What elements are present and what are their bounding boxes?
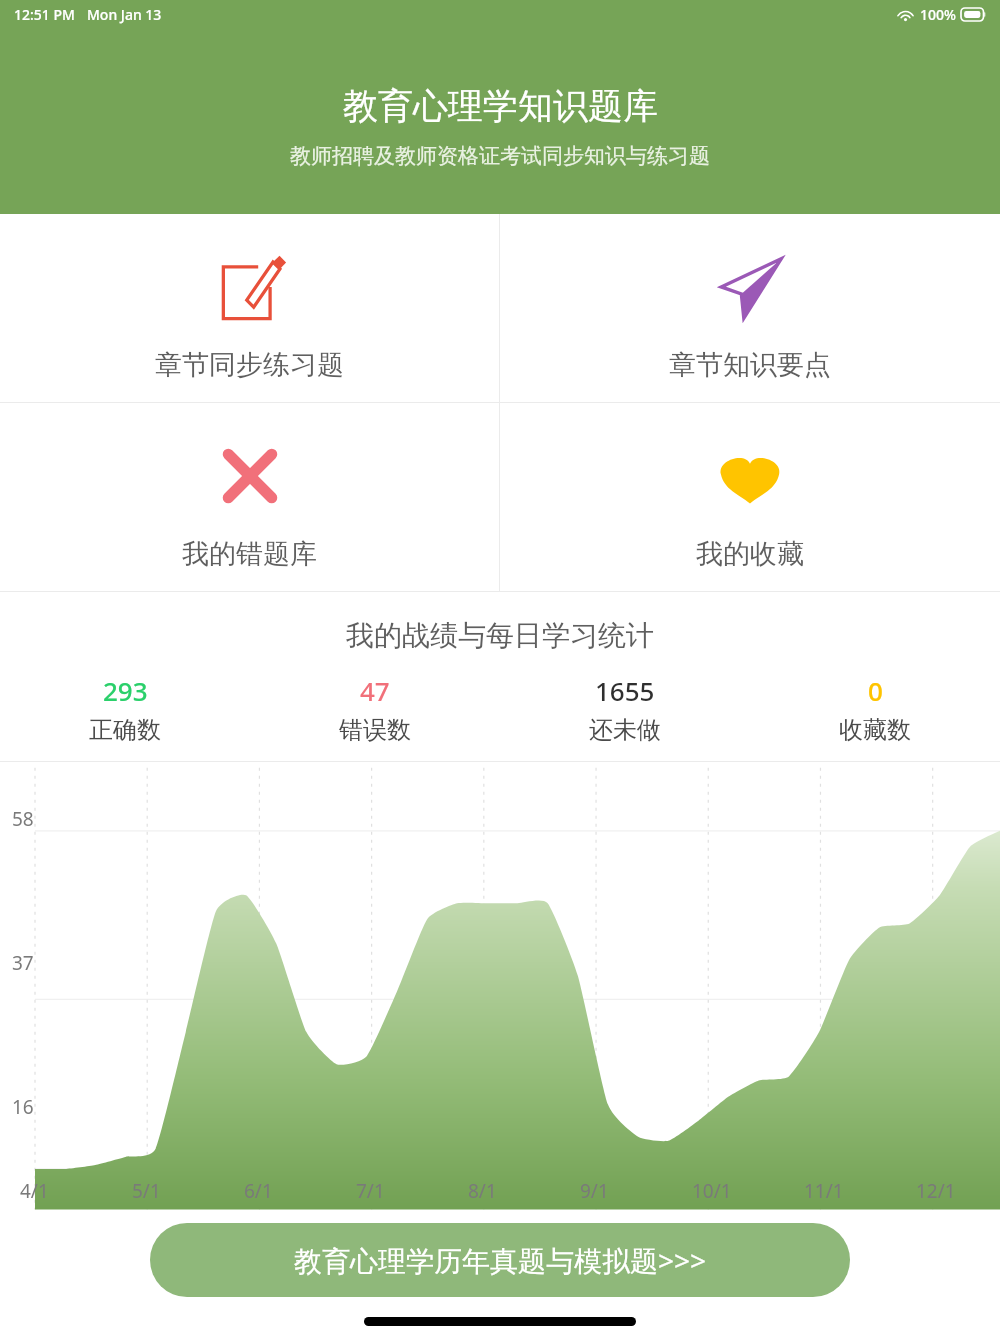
button[interactable]: 章节知识要点 (500, 214, 1000, 402)
staticText: 8/1 (468, 1178, 497, 1204)
staticText: 9/1 (580, 1178, 609, 1204)
button[interactable]: 我的收藏 (500, 403, 1000, 591)
staticText: 37 (12, 950, 34, 976)
staticText: 我的错题库 (182, 537, 317, 571)
button[interactable]: 1655 (500, 673, 750, 745)
staticText: 12:51 PM (14, 5, 75, 24)
staticText: 58 (12, 806, 34, 832)
button[interactable]: 293 (0, 673, 250, 745)
staticText: 0 (868, 673, 883, 708)
staticText: 12/1 (916, 1178, 956, 1204)
staticText: 错误数 (339, 715, 411, 745)
staticText: 16 (12, 1094, 34, 1120)
staticText: 1655 (595, 673, 655, 708)
staticText: 4/1 (20, 1178, 49, 1204)
staticText: 收藏数 (839, 715, 911, 745)
staticText: 293 (103, 673, 148, 708)
staticText: 47 (360, 673, 390, 708)
staticText: 教育心理学历年真题与模拟题>>> (294, 1241, 707, 1279)
staticText: 还未做 (589, 715, 661, 745)
button[interactable]: 教育心理学历年真题与模拟题>>> (150, 1223, 850, 1297)
staticText: 正确数 (89, 715, 161, 745)
button[interactable]: 0 (750, 673, 1000, 745)
staticText: 我的收藏 (696, 537, 804, 571)
staticText: 我的战绩与每日学习统计 (346, 618, 654, 653)
staticText: 教育心理学知识题库 (343, 84, 658, 128)
staticText: 章节同步练习题 (155, 348, 344, 382)
staticText: 7/1 (356, 1178, 385, 1204)
staticText: 6/1 (244, 1178, 273, 1204)
staticText: Mon Jan 13 (87, 5, 162, 24)
button[interactable]: 47 (250, 673, 500, 745)
staticText: 100% (920, 5, 956, 24)
button[interactable]: 章节同步练习题 (0, 214, 499, 402)
staticText: 章节知识要点 (669, 348, 831, 382)
staticText: 10/1 (692, 1178, 732, 1204)
button[interactable]: 我的错题库 (0, 403, 499, 591)
staticText: 教师招聘及教师资格证考试同步知识与练习题 (290, 143, 710, 169)
staticText: 11/1 (804, 1178, 844, 1204)
staticText: 5/1 (132, 1178, 161, 1204)
